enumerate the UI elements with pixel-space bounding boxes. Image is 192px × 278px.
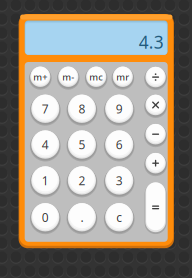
button[interactable]: 4 [29,128,61,161]
button[interactable]: Memory add [28,65,52,89]
staticText: 6 [116,137,123,152]
staticText: 0 [42,209,49,225]
button[interactable]: 7 [29,93,61,125]
staticText: c [116,209,122,225]
staticText: m+ [33,71,47,83]
button[interactable]: 8 [66,93,98,125]
button[interactable]: Subtract [143,122,168,146]
button[interactable]: 1 [29,164,61,197]
button[interactable]: Memory clear [84,65,108,89]
button[interactable]: . [66,201,98,233]
button[interactable]: Memory recall [111,65,135,89]
staticText: 1 [42,172,49,188]
button[interactable]: Add [143,151,168,175]
button[interactable]: 3 [103,164,135,197]
staticText: 4.3 [139,30,164,53]
button[interactable]: Equals [144,181,167,234]
button[interactable]: 5 [66,128,98,161]
staticText: . [80,209,83,225]
staticText: 8 [78,101,85,117]
button[interactable]: Memory subtract [56,65,80,89]
staticText: 4 [42,137,49,152]
staticText: 5 [78,137,85,152]
button[interactable]: Divide [143,65,168,89]
staticText: m- [62,71,74,83]
staticText: mr [116,71,129,83]
staticText: 7 [42,101,49,117]
button[interactable]: 9 [103,93,135,125]
staticText: mc [89,71,103,83]
staticText: 9 [116,101,123,117]
button[interactable]: 6 [103,128,135,161]
button[interactable]: 0 [29,201,61,233]
button[interactable]: Multiply [143,93,168,117]
staticText: 2 [78,172,85,188]
button[interactable]: 2 [66,164,98,197]
staticText: 3 [116,172,123,188]
button[interactable]: c [103,201,135,233]
